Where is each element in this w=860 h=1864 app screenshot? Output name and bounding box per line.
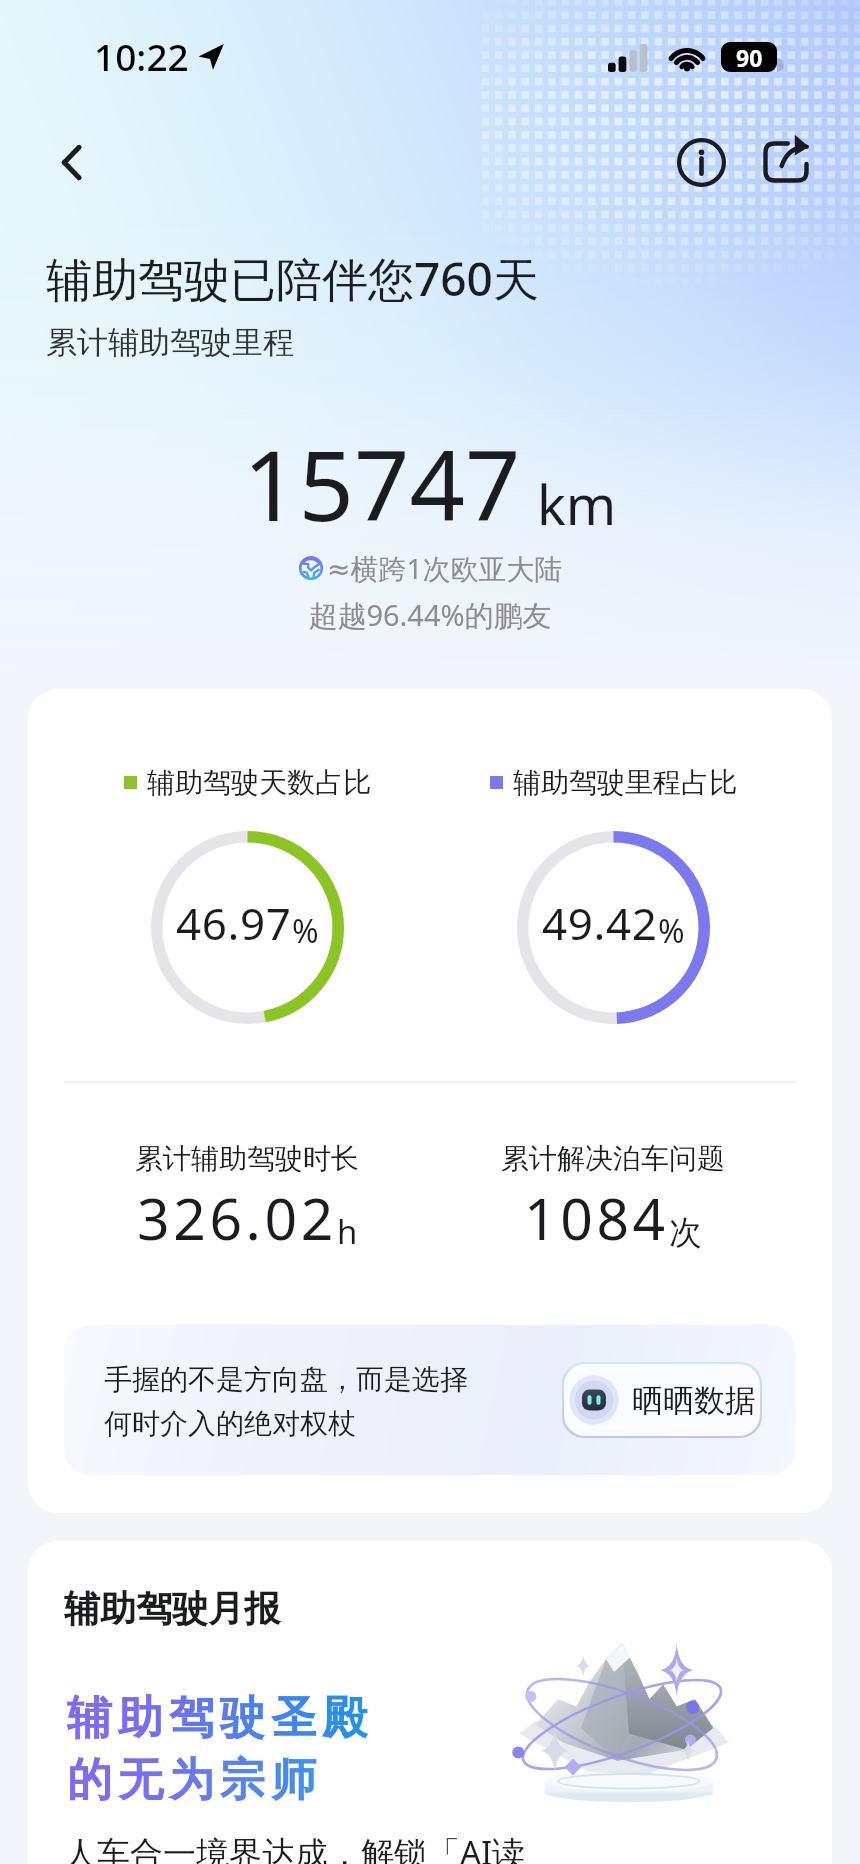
- staticText: 的无为宗师: [64, 1752, 319, 1809]
- staticText: 累计辅助驾驶时长: [135, 1141, 359, 1176]
- staticText: 10:22: [94, 31, 189, 81]
- staticText: 辅助驾驶月报: [64, 1586, 280, 1631]
- staticText: 次: [669, 1212, 702, 1254]
- staticText: %: [292, 909, 319, 953]
- staticText: 326.02: [137, 1179, 337, 1257]
- button[interactable]: 辅助驾驶月报: [28, 1541, 832, 1864]
- staticText: 46.97: [176, 893, 292, 953]
- button[interactable]: Info: [670, 131, 732, 193]
- staticText: 人车合一境界达成，解锁「AI读: [64, 1830, 526, 1864]
- staticText: 15747: [243, 417, 521, 549]
- button[interactable]: Share: [755, 131, 817, 193]
- staticText: 超越96.44%的鹏友: [0, 595, 860, 635]
- staticText: 49.42: [542, 893, 658, 953]
- staticText: 辅助驾驶已陪伴您760天: [46, 247, 539, 310]
- button[interactable]: Back: [44, 134, 100, 190]
- staticText: 手握的不是方向盘，而是选择: [104, 1362, 468, 1397]
- staticText: km: [537, 467, 617, 541]
- staticText: %: [658, 909, 685, 953]
- staticText: 1084: [524, 1179, 669, 1257]
- staticText: 90: [736, 42, 763, 72]
- staticText: ≈横跨1次欧亚大陆: [327, 549, 563, 587]
- staticText: h: [337, 1209, 358, 1254]
- staticText: 晒晒数据: [632, 1381, 756, 1420]
- button[interactable]: 晒晒数据: [564, 1364, 760, 1436]
- staticText: 何时介入的绝对权杖: [104, 1406, 356, 1441]
- staticText: 辅助驾驶里程占比: [513, 765, 737, 800]
- staticText: 辅助驾驶圣殿: [64, 1690, 370, 1747]
- staticText: 累计辅助驾驶里程: [46, 323, 294, 362]
- staticText: 辅助驾驶天数占比: [147, 765, 371, 800]
- staticText: 累计解决泊车问题: [501, 1141, 725, 1176]
